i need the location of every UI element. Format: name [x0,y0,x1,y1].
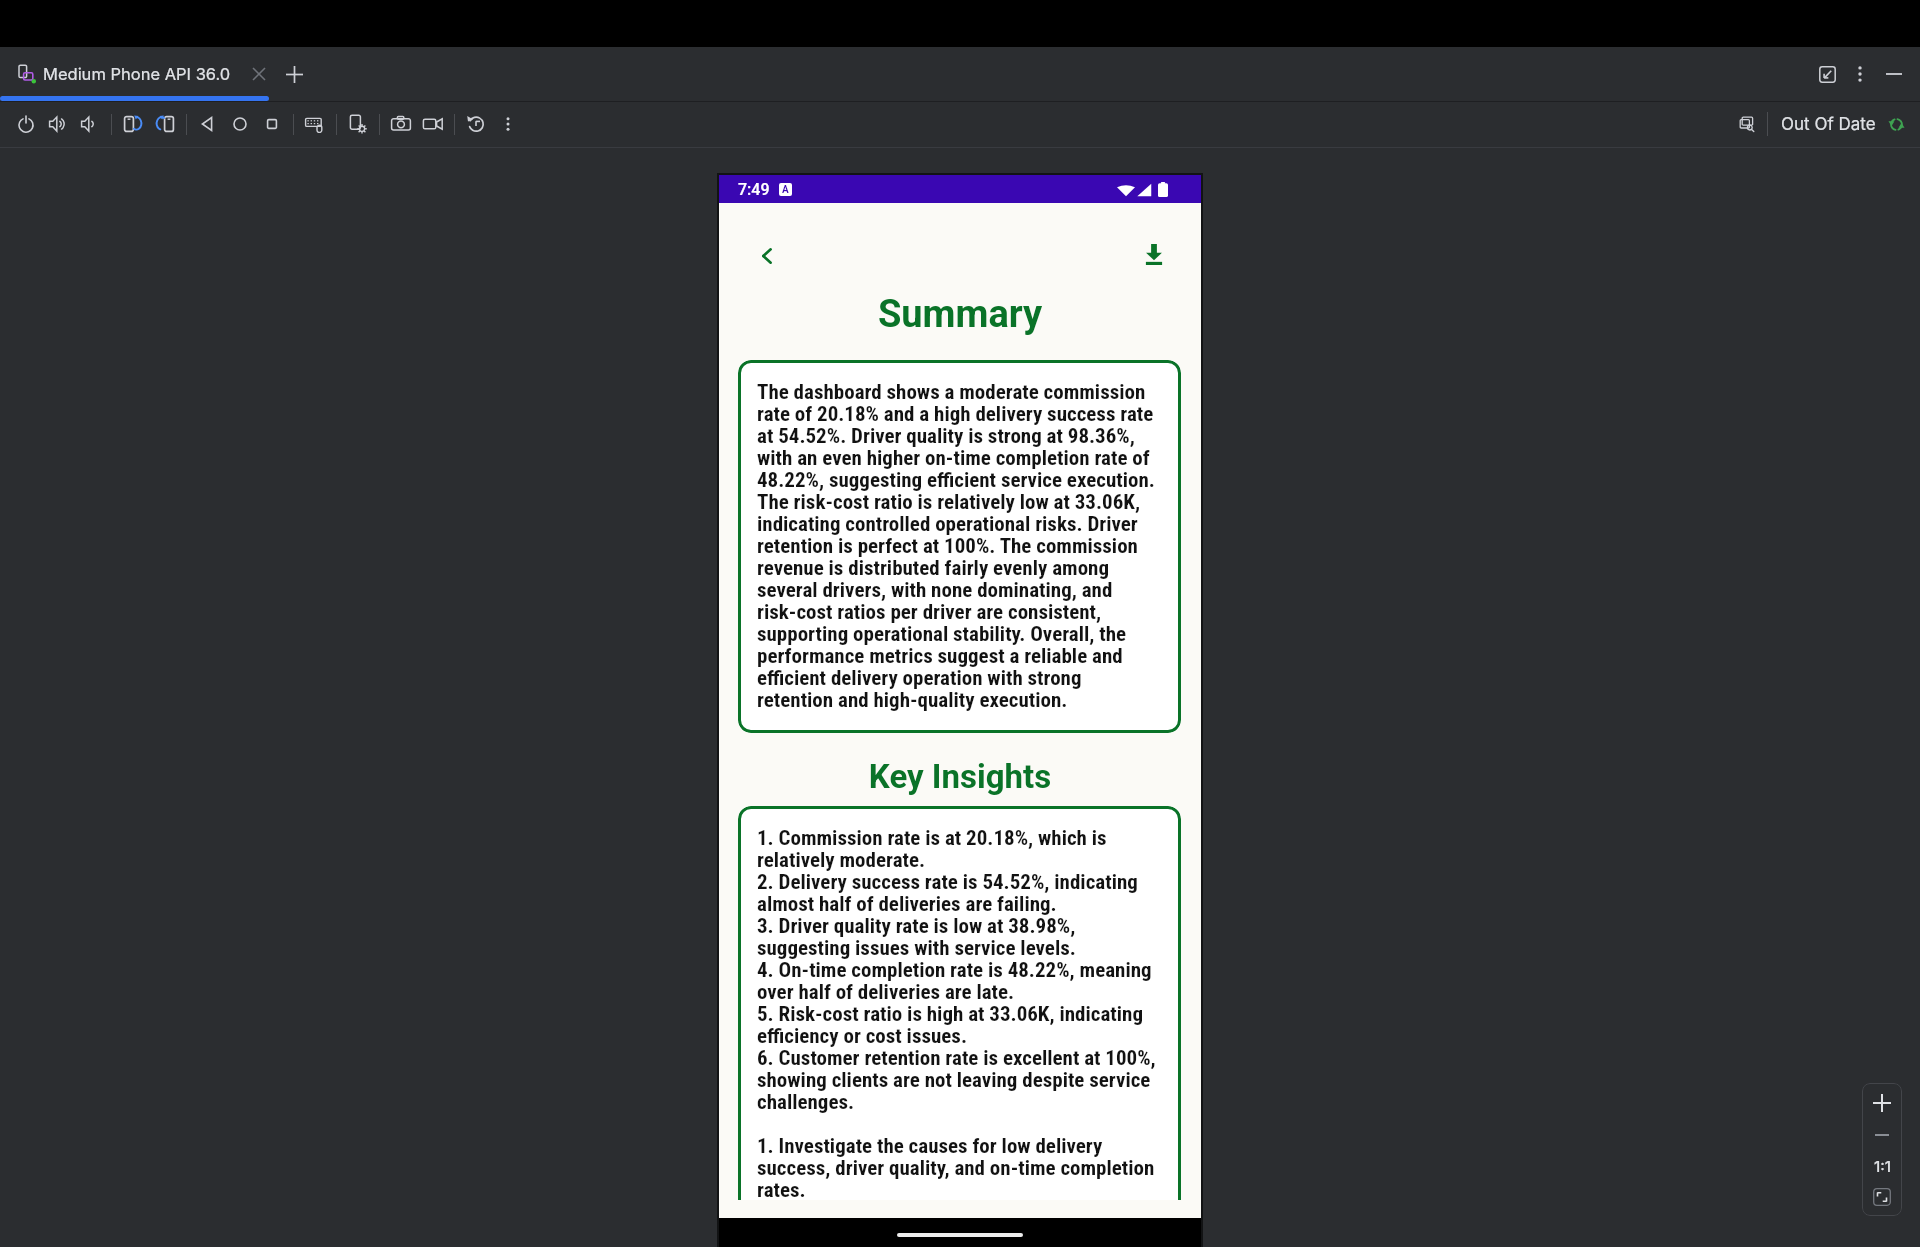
button[interactable]: Volume up [42,108,74,140]
button[interactable]: The dashboard shows a moderate commissio… [738,360,1181,733]
button[interactable]: More [492,108,524,140]
button[interactable]: Minimize [1881,61,1907,87]
staticText: Out Of Date [1781,114,1876,135]
button[interactable]: 1:1 [1867,1151,1897,1181]
button[interactable]: Record screen [417,108,449,140]
staticText: The dashboard shows a moderate commissio… [757,380,1159,713]
button[interactable]: New tab [281,61,307,87]
button[interactable]: Zoom to fit [1868,1183,1896,1211]
button[interactable]: Inspect layout [1732,109,1762,139]
button[interactable]: Refresh [1885,113,1907,135]
staticText: Key Insights [719,757,1201,796]
button[interactable]: Volume down [74,108,106,140]
button[interactable]: Back [192,108,224,140]
button[interactable]: Zoom out [1867,1120,1897,1150]
button[interactable]: Power [10,108,42,140]
button[interactable]: More options [1848,62,1872,86]
staticText: A [782,184,789,196]
staticText: Medium Phone API 36.0 [43,64,231,84]
staticText: 7:49 [738,180,770,199]
button[interactable]: Home [224,108,256,140]
button[interactable]: 1. Commission rate is at 20.18%, which i… [738,806,1181,1200]
button[interactable]: Device settings [342,108,374,140]
button[interactable]: Dock panel [1813,60,1841,88]
button[interactable]: Restore [460,108,492,140]
button[interactable]: Close tab [247,62,271,86]
button[interactable]: Zoom in [1867,1088,1897,1118]
staticText: Summary [719,292,1201,337]
staticText: 1:1 [1874,1157,1891,1175]
staticText: 1. Commission rate is at 20.18%, which i… [757,826,1159,1200]
button[interactable]: Overview [256,108,288,140]
button[interactable]: Take screenshot [385,108,417,140]
button[interactable]: Download [1135,236,1172,273]
button[interactable]: Back [748,237,785,274]
button[interactable]: Keyboard and mouse [299,108,331,140]
button[interactable]: Medium Phone API 36.0 [17,47,231,101]
button[interactable]: Rotate left [117,108,149,140]
button[interactable]: Rotate right [149,108,181,140]
